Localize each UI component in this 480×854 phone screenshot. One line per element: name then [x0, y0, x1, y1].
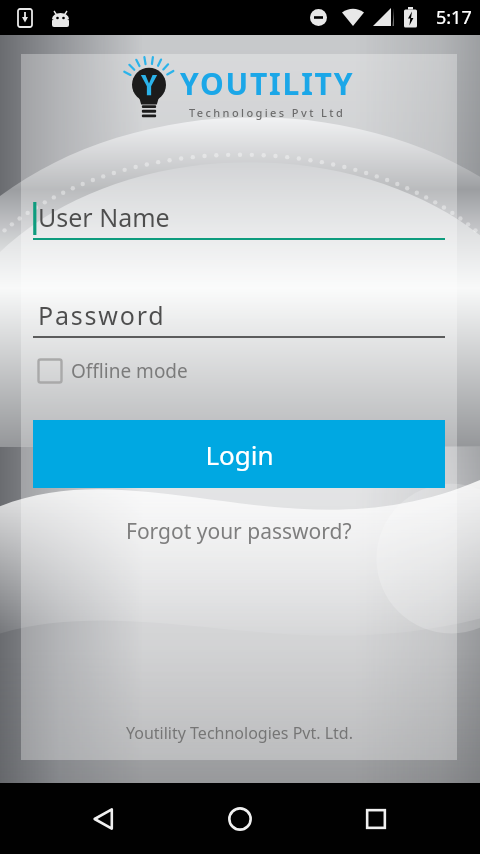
- button[interactable]: Home: [208, 787, 272, 851]
- staticText: YOUTILITY: [180, 63, 355, 104]
- button[interactable]: User Name: [33, 200, 445, 240]
- staticText: User Name: [38, 200, 170, 234]
- button[interactable]: Password: [33, 298, 445, 338]
- staticText: Offline mode: [71, 358, 188, 384]
- staticText: Youtility Technologies Pvt. Ltd.: [126, 722, 353, 744]
- button[interactable]: Offline mode: [33, 354, 445, 388]
- staticText: Password: [38, 298, 166, 332]
- staticText: 5:17: [436, 5, 472, 30]
- staticText: Login: [205, 437, 274, 472]
- staticText: Forgot your password?: [126, 517, 352, 546]
- button[interactable]: Forgot your password?: [112, 512, 366, 551]
- button[interactable]: Recent apps: [344, 787, 408, 851]
- button[interactable]: Back: [72, 787, 136, 851]
- button[interactable]: Login: [33, 420, 445, 488]
- staticText: Technologies Pvt Ltd: [189, 105, 346, 120]
